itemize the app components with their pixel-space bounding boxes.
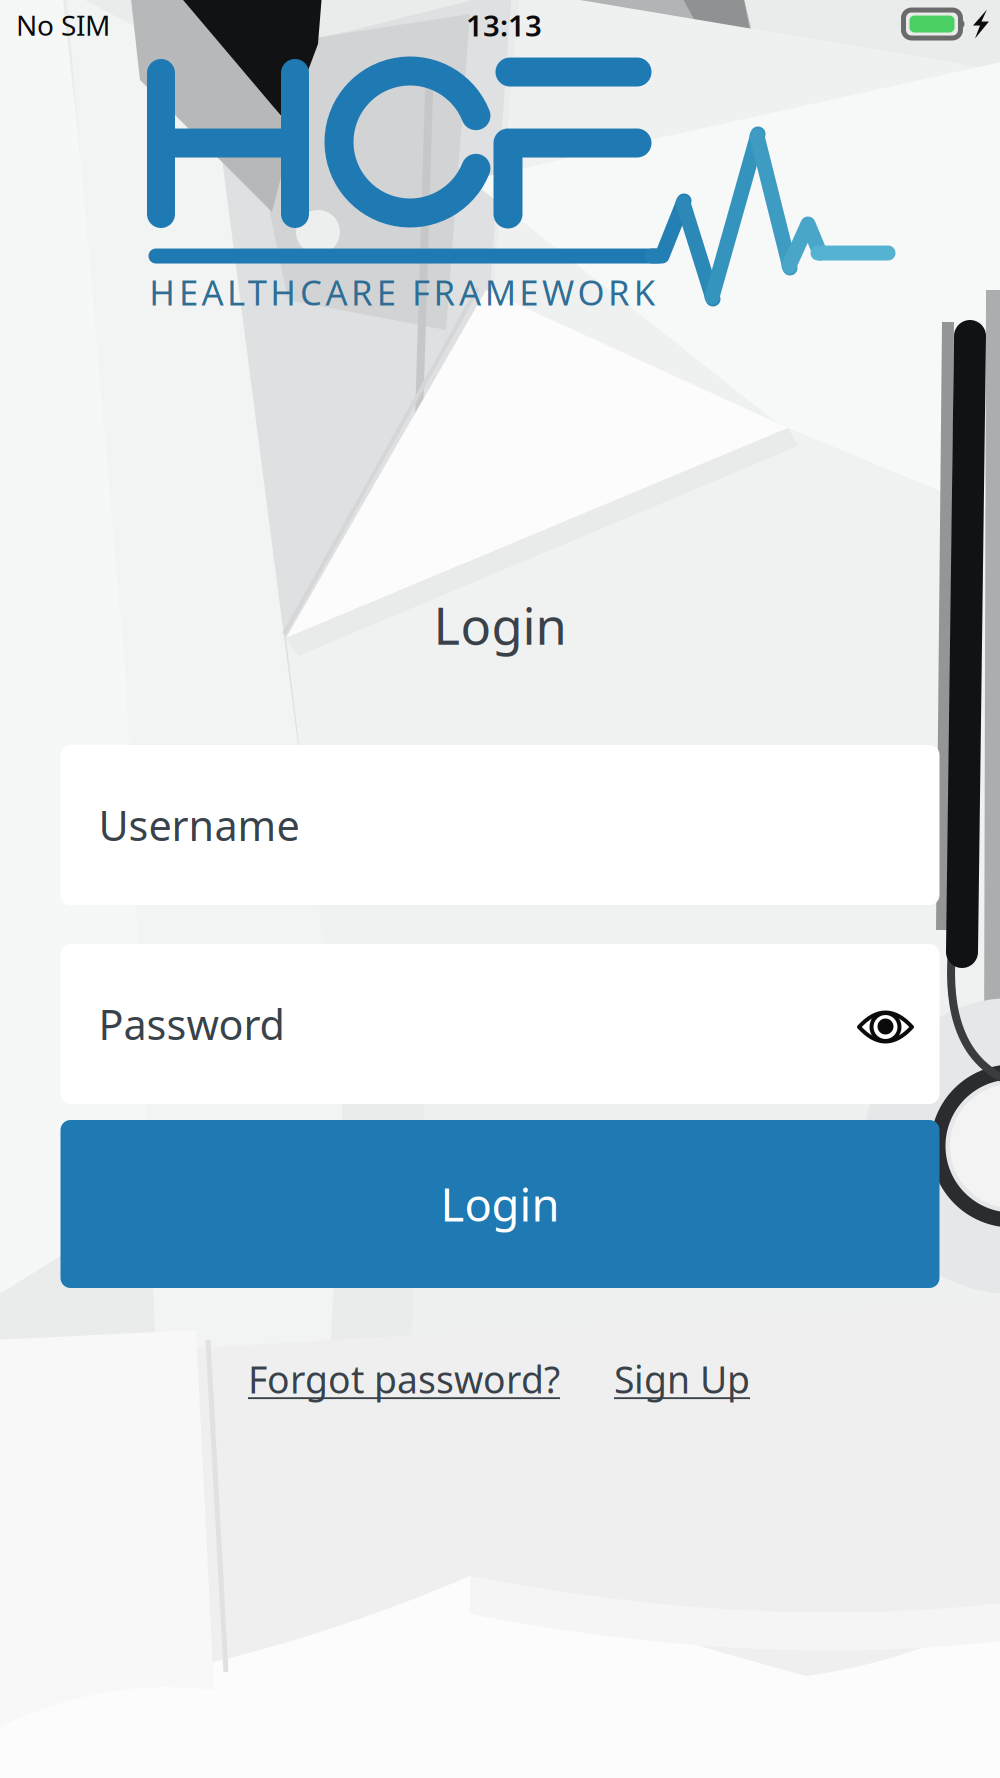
staticText: Login xyxy=(440,1174,559,1234)
staticText: Forgot password? xyxy=(248,1354,560,1404)
button[interactable]: Sign Up xyxy=(614,1354,750,1404)
staticText: Sign Up xyxy=(614,1354,750,1404)
staticText: HEALTHCARE FRAMEWORK xyxy=(149,269,655,315)
staticText: No SIM xyxy=(16,6,110,44)
button[interactable]: Login xyxy=(60,1120,939,1288)
staticText: 13:13 xyxy=(466,5,542,44)
staticText: Login xyxy=(433,591,566,659)
button[interactable]: Forgot password? xyxy=(248,1354,560,1404)
button[interactable]: Show password xyxy=(856,1010,914,1044)
staticText: Password xyxy=(98,997,284,1051)
staticText: Username xyxy=(98,798,299,852)
